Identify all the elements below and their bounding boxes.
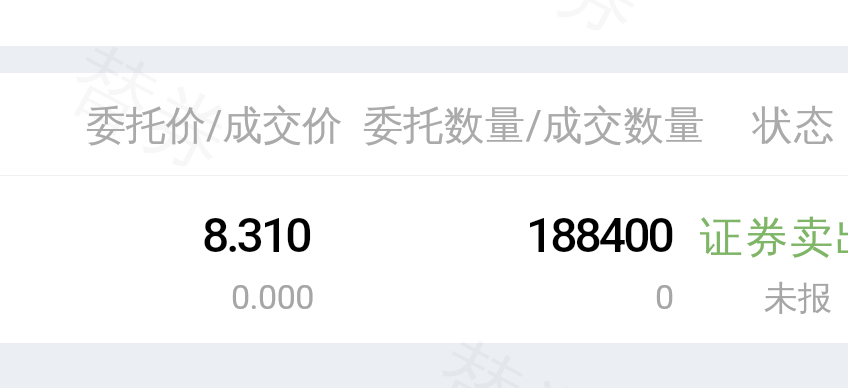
staticText: 委托价/成交价 <box>86 100 343 150</box>
staticText: 8.310 <box>202 207 310 263</box>
staticText: 状态 <box>752 100 835 150</box>
staticText: 替券 <box>463 0 661 61</box>
staticText: 188400 <box>526 207 672 263</box>
staticText: 0 <box>655 277 675 317</box>
staticText: 替券 <box>415 319 613 388</box>
staticText: 证券卖出 <box>699 211 848 265</box>
staticText: 替券 <box>49 25 247 197</box>
staticText: 委托数量/成交数量 <box>363 100 705 150</box>
button[interactable]: 8.310 <box>0 176 848 343</box>
staticText: 0.000 <box>231 277 314 317</box>
staticText: 未报 <box>764 277 832 320</box>
